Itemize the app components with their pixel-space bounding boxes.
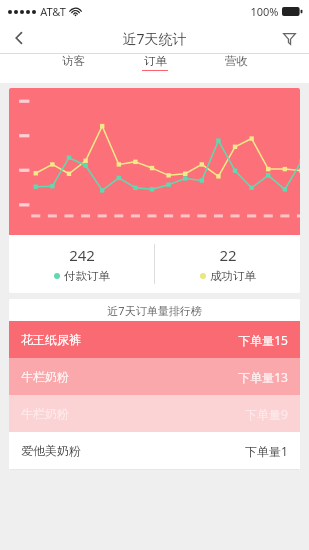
staticText: 下单量1: [245, 443, 288, 459]
staticText: 下单量9: [245, 406, 288, 422]
button[interactable]: 爱他美奶粉: [9, 432, 300, 469]
staticText: 订单: [144, 54, 167, 68]
staticText: 花王纸尿裤: [21, 332, 81, 347]
button[interactable]: 花王纸尿裤: [9, 321, 300, 358]
button[interactable]: 242: [9, 245, 154, 283]
staticText: 近7天订单量排行榜: [107, 303, 202, 318]
staticText: AT&T: [40, 4, 66, 19]
button[interactable]: Filter: [269, 22, 309, 54]
button[interactable]: 牛栏奶粉: [9, 395, 300, 432]
staticText: 付款订单: [64, 269, 110, 283]
staticText: 营收: [225, 54, 248, 68]
button[interactable]: 营收: [221, 54, 251, 71]
button[interactable]: 订单: [140, 54, 170, 71]
staticText: 下单量15: [238, 332, 288, 348]
button[interactable]: Back: [0, 22, 38, 54]
staticText: 下单量13: [238, 369, 288, 385]
button[interactable]: 牛栏奶粉: [9, 358, 300, 395]
button[interactable]: 22: [155, 245, 300, 283]
staticText: 成功订单: [210, 269, 256, 283]
staticText: 100%: [250, 4, 279, 19]
staticText: 242: [69, 245, 95, 265]
staticText: 牛栏奶粉: [21, 406, 69, 421]
staticText: 访客: [62, 54, 85, 68]
staticText: 22: [219, 245, 237, 265]
staticText: 爱他美奶粉: [21, 443, 81, 458]
staticText: 牛栏奶粉: [21, 369, 69, 384]
staticText: 近7天统计: [122, 29, 187, 48]
button[interactable]: 访客: [58, 54, 88, 71]
